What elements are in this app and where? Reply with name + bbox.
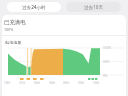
staticText: 过去10天 xyxy=(84,4,104,10)
staticText: 50% xyxy=(103,60,110,64)
staticText: 100% xyxy=(103,46,112,50)
button[interactable]: 过去24小时 xyxy=(7,2,61,12)
staticText: 09时 xyxy=(78,81,85,85)
staticText: 电池电量 xyxy=(5,40,22,45)
staticText: 06时 xyxy=(63,81,70,85)
staticText: 03时 xyxy=(49,81,56,85)
staticText: 已充满电 xyxy=(4,19,26,26)
staticText: 00时 xyxy=(34,81,41,85)
button[interactable]: 过去10天 xyxy=(66,2,121,12)
staticText: 18时 xyxy=(4,81,11,85)
staticText: 12时 xyxy=(93,81,100,85)
staticText: 0% xyxy=(103,74,108,78)
staticText: 100% xyxy=(4,27,14,32)
staticText: 21时 xyxy=(19,81,26,85)
staticText: 过去24小时 xyxy=(22,4,46,10)
